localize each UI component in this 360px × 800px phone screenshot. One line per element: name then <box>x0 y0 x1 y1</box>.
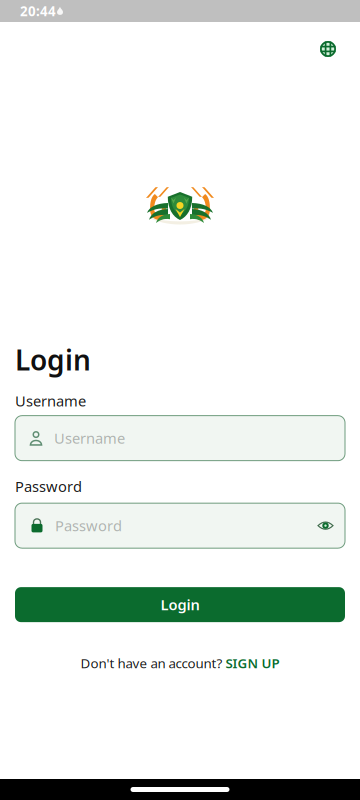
staticText: Password <box>15 477 82 496</box>
staticText: SIGN UP <box>225 654 279 672</box>
button[interactable]: SIGN UP <box>225 654 279 672</box>
staticText: Username <box>15 391 86 411</box>
button[interactable]: Password <box>15 503 306 548</box>
staticText: Login <box>15 341 91 378</box>
button[interactable]: Show password <box>306 503 345 548</box>
staticText: 20:44 <box>20 2 56 20</box>
button[interactable]: Change language <box>309 30 347 68</box>
staticText: Username <box>54 428 125 448</box>
button[interactable]: Username <box>15 416 345 461</box>
staticText: Don't have an account? <box>80 654 225 672</box>
staticText: Login <box>160 595 199 614</box>
button[interactable]: Login <box>15 587 345 622</box>
staticText: Password <box>55 516 122 535</box>
